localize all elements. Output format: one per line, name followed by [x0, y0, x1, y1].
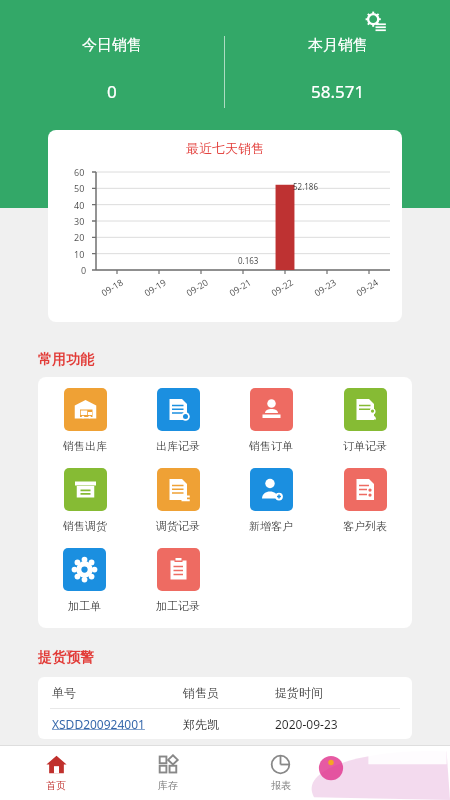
- staticText: 销售员: [183, 685, 275, 700]
- staticText: 调货记录: [156, 519, 200, 533]
- button[interactable]: 首页: [0, 746, 112, 800]
- staticText: 50: [74, 182, 85, 194]
- staticText: 2020-09-23: [275, 716, 338, 732]
- staticText: 常用功能: [38, 351, 94, 369]
- staticText: 郑先凯: [183, 717, 275, 732]
- staticText: 09-22: [269, 276, 295, 298]
- staticText: 09-18: [99, 276, 125, 298]
- button[interactable]: 销售出库: [63, 388, 107, 453]
- staticText: 提货预警: [38, 649, 94, 667]
- staticText: 销售调货: [63, 519, 107, 533]
- staticText: 60: [74, 166, 85, 178]
- staticText: 58.571: [311, 80, 365, 103]
- staticText: 出库记录: [156, 439, 200, 453]
- staticText: 20: [74, 231, 85, 243]
- staticText: XSDD200924001: [52, 716, 183, 732]
- staticText: 0: [107, 80, 117, 103]
- staticText: 销售订单: [249, 439, 293, 453]
- button[interactable]: XSDD200924001: [38, 709, 412, 739]
- staticText: 新增客户: [249, 519, 293, 533]
- staticText: 订单记录: [343, 439, 387, 453]
- staticText: 单号: [52, 685, 183, 700]
- button[interactable]: 加工单: [63, 548, 106, 613]
- button[interactable]: 新增客户: [249, 468, 293, 533]
- staticText: 09-21: [227, 276, 253, 298]
- button[interactable]: 订单记录: [343, 388, 387, 453]
- staticText: 52.186: [293, 181, 319, 192]
- button[interactable]: 报表: [224, 746, 337, 800]
- button[interactable]: 销售调货: [63, 468, 107, 533]
- staticText: 0: [81, 264, 87, 276]
- staticText: 09-23: [312, 276, 338, 298]
- staticText: 0.163: [238, 255, 259, 266]
- button[interactable]: Settings: [355, 1, 395, 41]
- button[interactable]: 调货记录: [156, 468, 200, 533]
- staticText: 报表: [271, 779, 291, 792]
- button[interactable]: 出库记录: [156, 388, 200, 453]
- staticText: 加工单: [68, 599, 101, 613]
- staticText: 销售出库: [63, 439, 107, 453]
- staticText: 本月销售: [308, 36, 368, 55]
- staticText: 09-20: [184, 276, 210, 298]
- staticText: 09-19: [142, 276, 168, 298]
- staticText: 10: [74, 248, 85, 260]
- staticText: 加工记录: [156, 599, 200, 613]
- staticText: 09-24: [354, 276, 380, 298]
- staticText: 40: [74, 199, 85, 211]
- staticText: 30: [74, 215, 85, 227]
- button[interactable]: 客户列表: [343, 468, 387, 533]
- staticText: 客户列表: [343, 519, 387, 533]
- staticText: 最近七天销售: [48, 140, 402, 156]
- staticText: 提货时间: [275, 685, 323, 700]
- button[interactable]: 销售订单: [249, 388, 293, 453]
- staticText: 库存: [158, 779, 178, 792]
- button[interactable]: 库存: [112, 746, 224, 800]
- staticText: 今日销售: [82, 36, 142, 55]
- staticText: 首页: [46, 779, 66, 792]
- button[interactable]: 加工记录: [156, 548, 200, 613]
